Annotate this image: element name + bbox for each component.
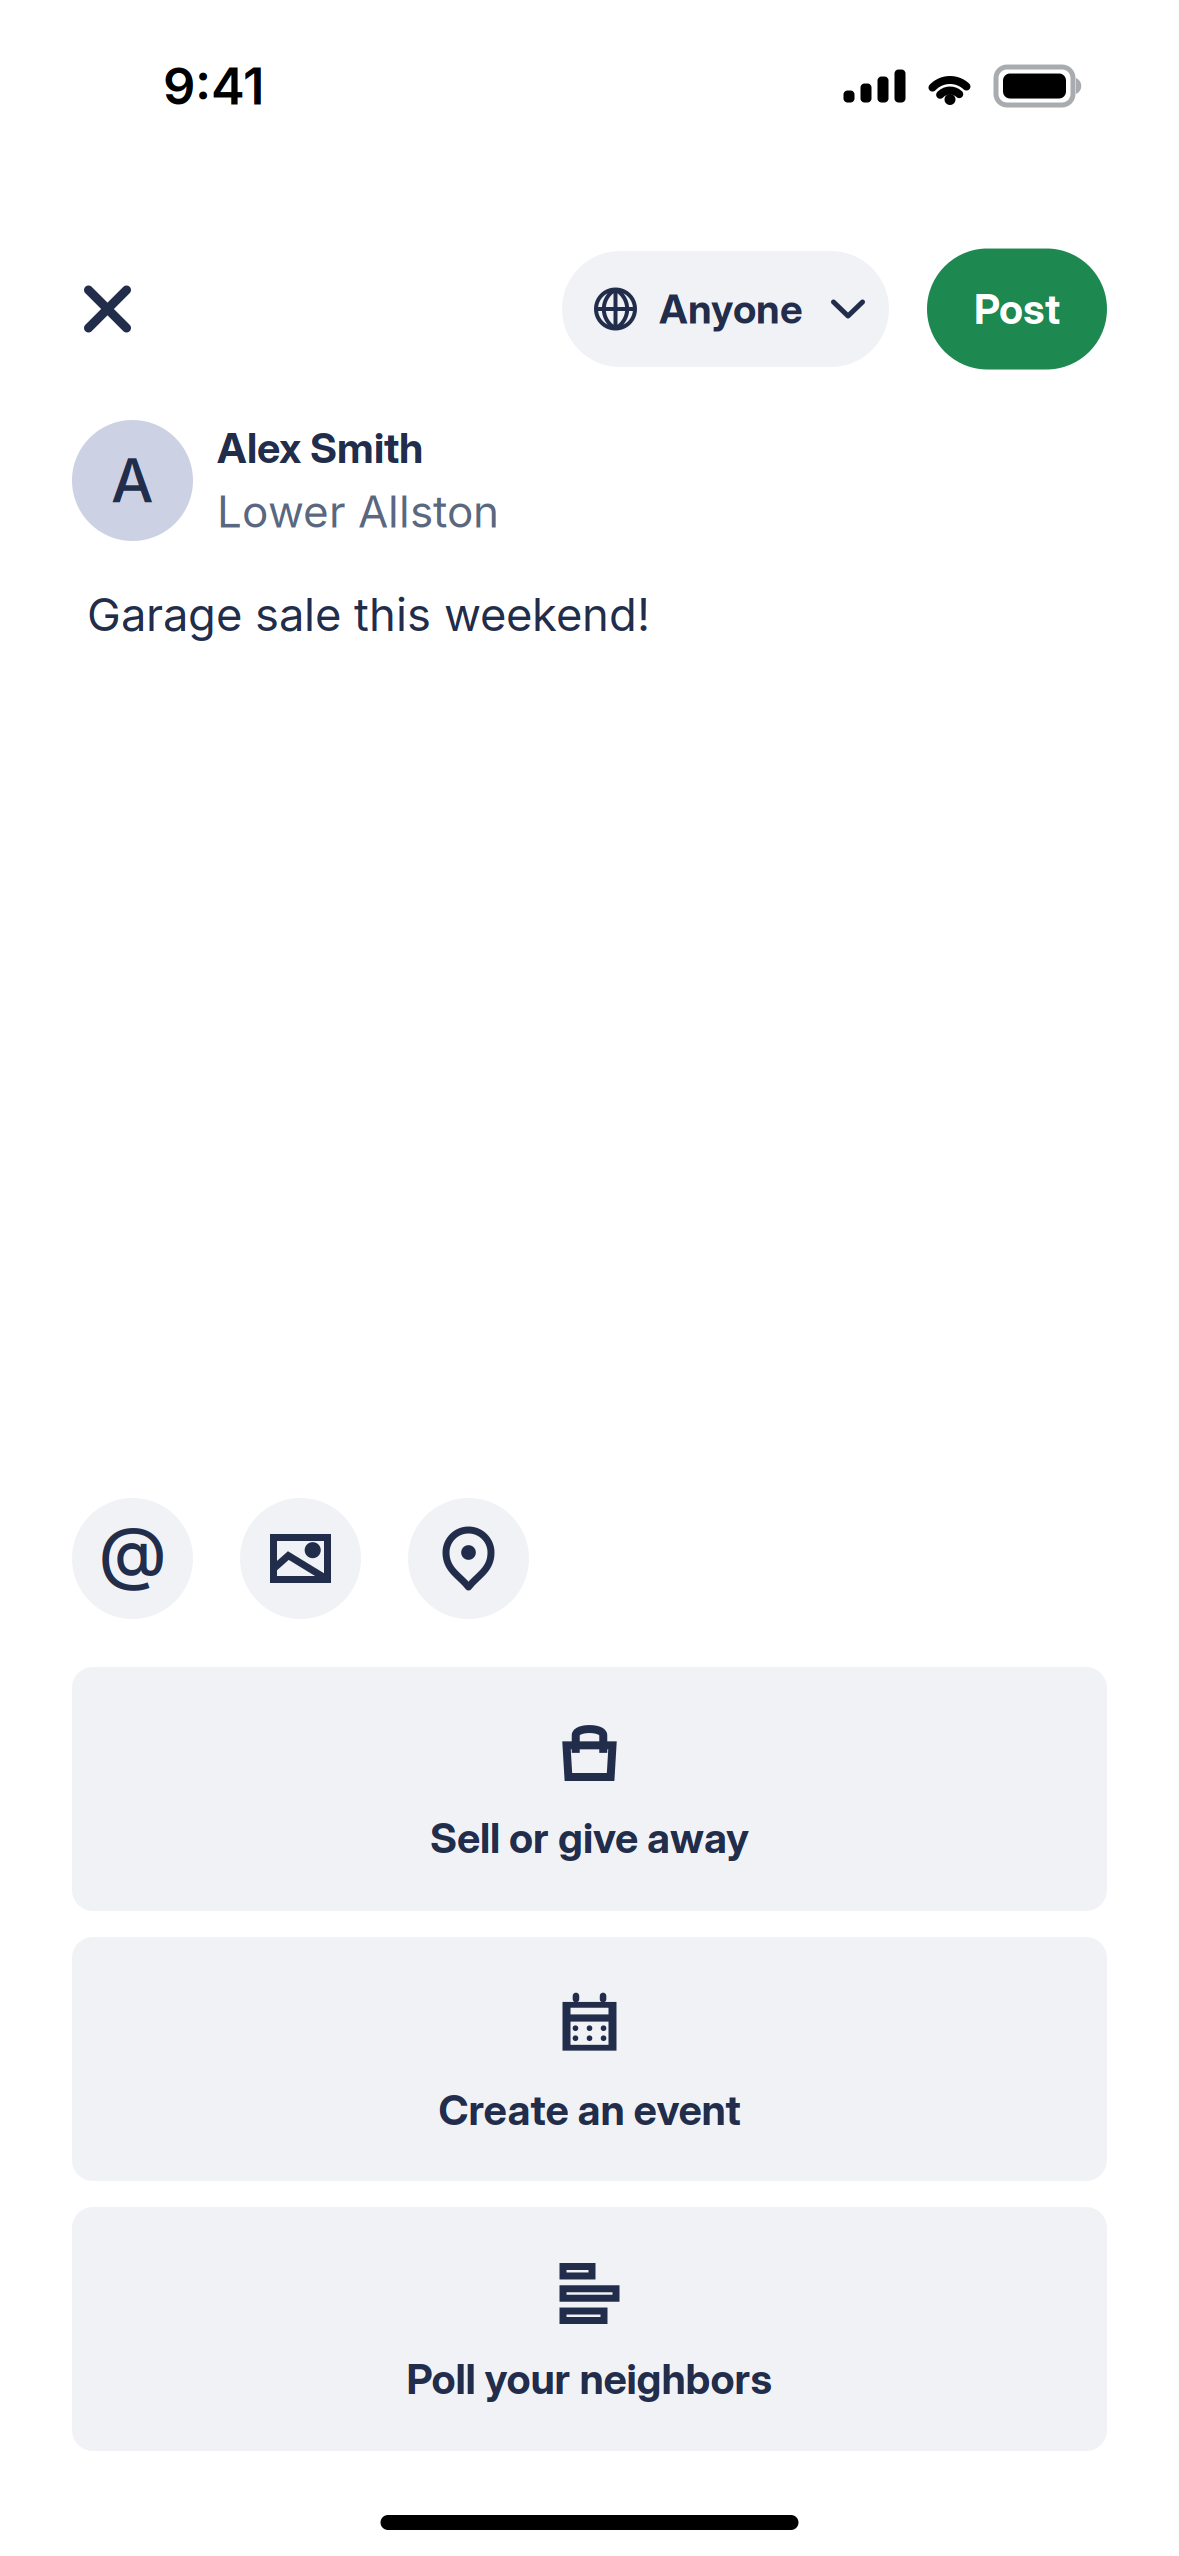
staticText: Alex Smith bbox=[217, 423, 423, 473]
button[interactable]: Sell or give away bbox=[72, 1667, 1107, 1911]
staticText: Post bbox=[974, 284, 1060, 334]
button[interactable]: Poll your neighbors bbox=[72, 2207, 1107, 2451]
button[interactable]: Add location bbox=[408, 1498, 529, 1619]
staticText: Poll your neighbors bbox=[406, 2354, 772, 2404]
staticText: Lower Allston bbox=[217, 485, 499, 538]
staticText: A bbox=[111, 444, 154, 517]
staticText: Create an event bbox=[438, 2085, 740, 2135]
button[interactable]: Mention someone bbox=[72, 1498, 193, 1619]
staticText: Anyone bbox=[659, 285, 803, 333]
staticText: @ bbox=[98, 1510, 166, 1594]
button[interactable]: Create an event bbox=[72, 1937, 1107, 2181]
button[interactable]: Close bbox=[72, 251, 131, 367]
button[interactable]: Add photo bbox=[240, 1498, 361, 1619]
staticText: Garage sale this weekend! bbox=[87, 587, 650, 642]
staticText: 9:41 bbox=[163, 55, 264, 117]
staticText: Sell or give away bbox=[430, 1813, 749, 1863]
button[interactable]: Post bbox=[927, 248, 1107, 369]
button[interactable]: Anyone bbox=[562, 251, 889, 367]
